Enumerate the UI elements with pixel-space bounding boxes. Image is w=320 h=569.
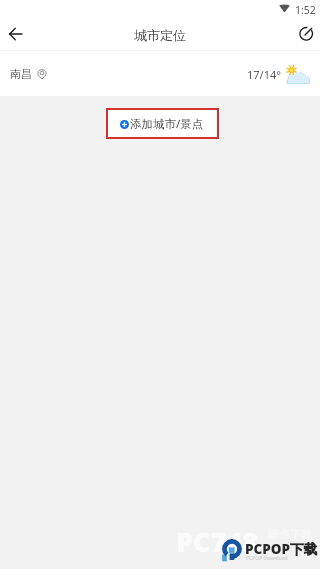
button[interactable]: 南昌 [0,51,320,96]
staticText: 南昌 [10,67,32,81]
staticText: 添加城市/景点 [130,116,204,132]
staticText: PCPOP下载 [245,540,318,558]
button[interactable]: Edit [291,20,320,51]
staticText: PC748 [176,523,259,560]
staticText: 城市定位 [134,27,186,43]
staticText: 1:52 [295,3,316,17]
staticText: 17/14° [247,67,281,82]
staticText: PCPOP Download [246,555,288,562]
button[interactable]: Back [0,20,31,51]
button[interactable]: 添加城市/景点 [108,110,217,137]
